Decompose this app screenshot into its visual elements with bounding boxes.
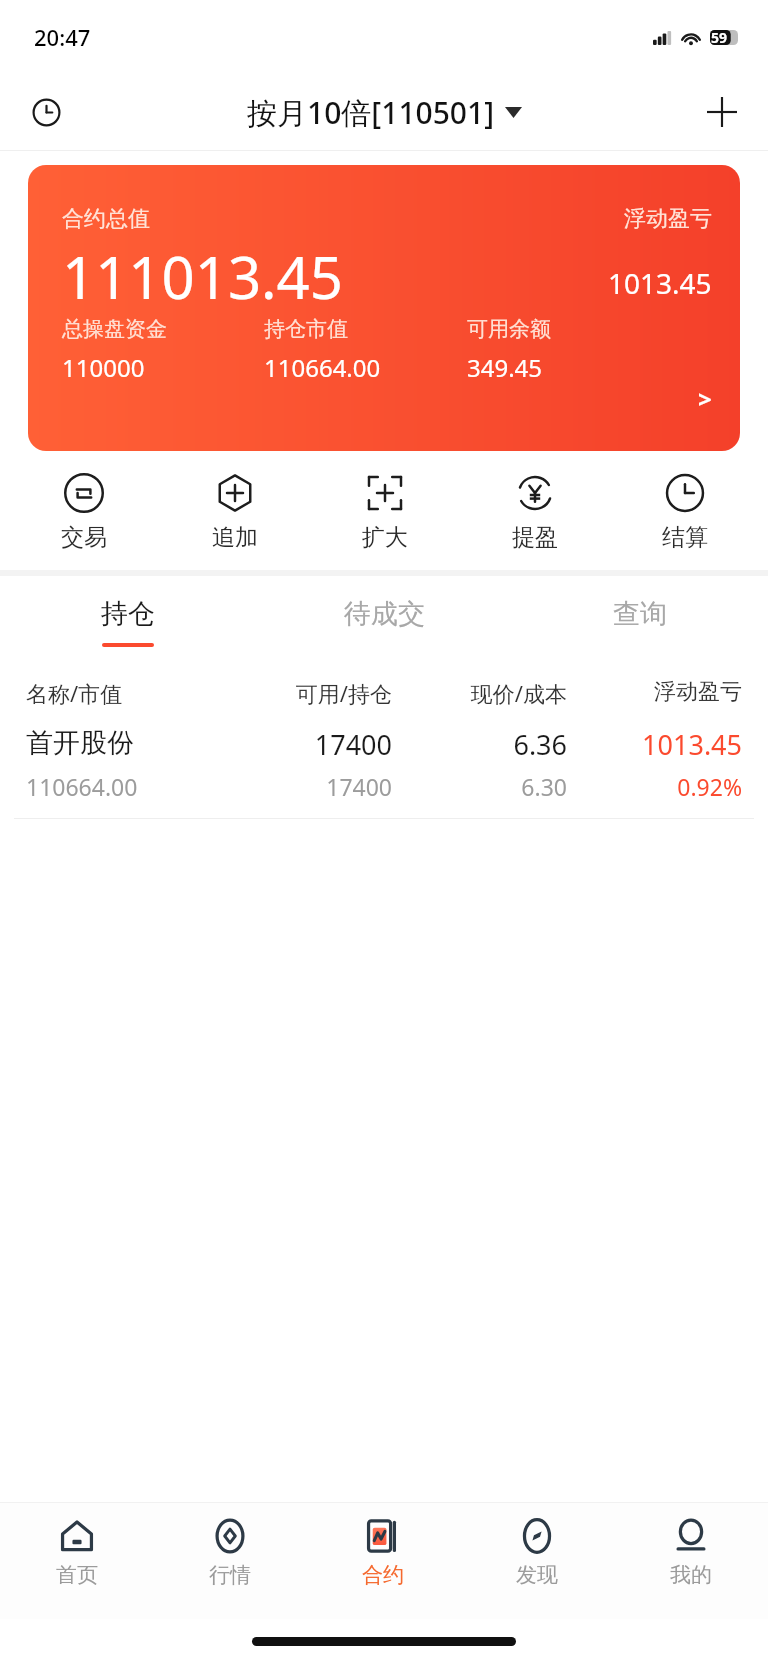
button[interactable]: 查询 — [512, 576, 768, 668]
staticText: 6.30 — [392, 771, 567, 802]
staticText: > — [698, 382, 712, 415]
staticText: 现价/成本 — [392, 678, 567, 708]
button[interactable]: 合约 — [306, 1503, 460, 1619]
button[interactable]: 发现 — [460, 1503, 614, 1619]
staticText: 17400 — [217, 771, 392, 802]
staticText: 追加 — [212, 523, 258, 552]
button[interactable]: 结算 — [610, 467, 760, 558]
staticText: 59 — [711, 28, 728, 47]
staticText: 可用余额 — [467, 316, 551, 342]
staticText: 我的 — [670, 1562, 712, 1588]
staticText: 110000 — [62, 351, 145, 384]
staticText: 总操盘资金 — [62, 316, 167, 342]
button[interactable]: 行情 — [153, 1503, 306, 1619]
staticText: 持仓市值 — [264, 316, 348, 342]
staticText: 6.36 — [392, 726, 567, 763]
staticText: 0.92% — [567, 771, 742, 802]
button[interactable]: 待成交 — [256, 576, 512, 668]
button[interactable]: 我的 — [614, 1503, 768, 1619]
staticText: 17400 — [217, 726, 392, 763]
button[interactable]: 提盈 — [460, 467, 610, 558]
staticText: 浮动盈亏 — [567, 678, 742, 706]
staticText: 按月10倍[110501] — [247, 92, 495, 133]
staticText: 1013.45 — [608, 264, 712, 302]
staticText: 111013.45 — [62, 237, 343, 316]
button[interactable]: 首页 — [0, 1503, 153, 1619]
button[interactable]: 追加 — [159, 467, 310, 558]
button[interactable]: Add — [694, 84, 750, 140]
staticText: 110664.00 — [26, 771, 217, 802]
staticText: 扩大 — [362, 523, 408, 552]
staticText: 20:47 — [34, 22, 91, 52]
staticText: 结算 — [662, 523, 708, 552]
staticText: 首页 — [56, 1562, 98, 1588]
button[interactable]: 扩大 — [310, 467, 460, 558]
button[interactable]: 首开股份 — [0, 718, 768, 818]
staticText: 查询 — [613, 597, 667, 631]
staticText: 1013.45 — [567, 726, 742, 763]
button[interactable]: 按月10倍[110501] — [247, 92, 522, 133]
staticText: 提盈 — [512, 523, 558, 552]
staticText: 行情 — [209, 1562, 251, 1588]
button[interactable]: 合约总值 — [28, 165, 740, 451]
button[interactable]: 交易 — [8, 467, 159, 558]
staticText: 浮动盈亏 — [624, 205, 712, 233]
staticText: 349.45 — [467, 351, 543, 384]
button[interactable]: History — [18, 84, 74, 140]
staticText: 110664.00 — [264, 351, 381, 384]
button[interactable]: 持仓 — [0, 576, 256, 668]
staticText: 合约 — [362, 1562, 404, 1588]
staticText: 名称/市值 — [26, 678, 217, 708]
staticText: 可用/持仓 — [217, 678, 392, 708]
staticText: 持仓 — [101, 597, 155, 631]
staticText: 首开股份 — [26, 726, 217, 760]
staticText: 发现 — [516, 1562, 558, 1588]
staticText: 待成交 — [344, 597, 425, 631]
staticText: 合约总值 — [62, 205, 150, 233]
staticText: 交易 — [61, 523, 107, 552]
